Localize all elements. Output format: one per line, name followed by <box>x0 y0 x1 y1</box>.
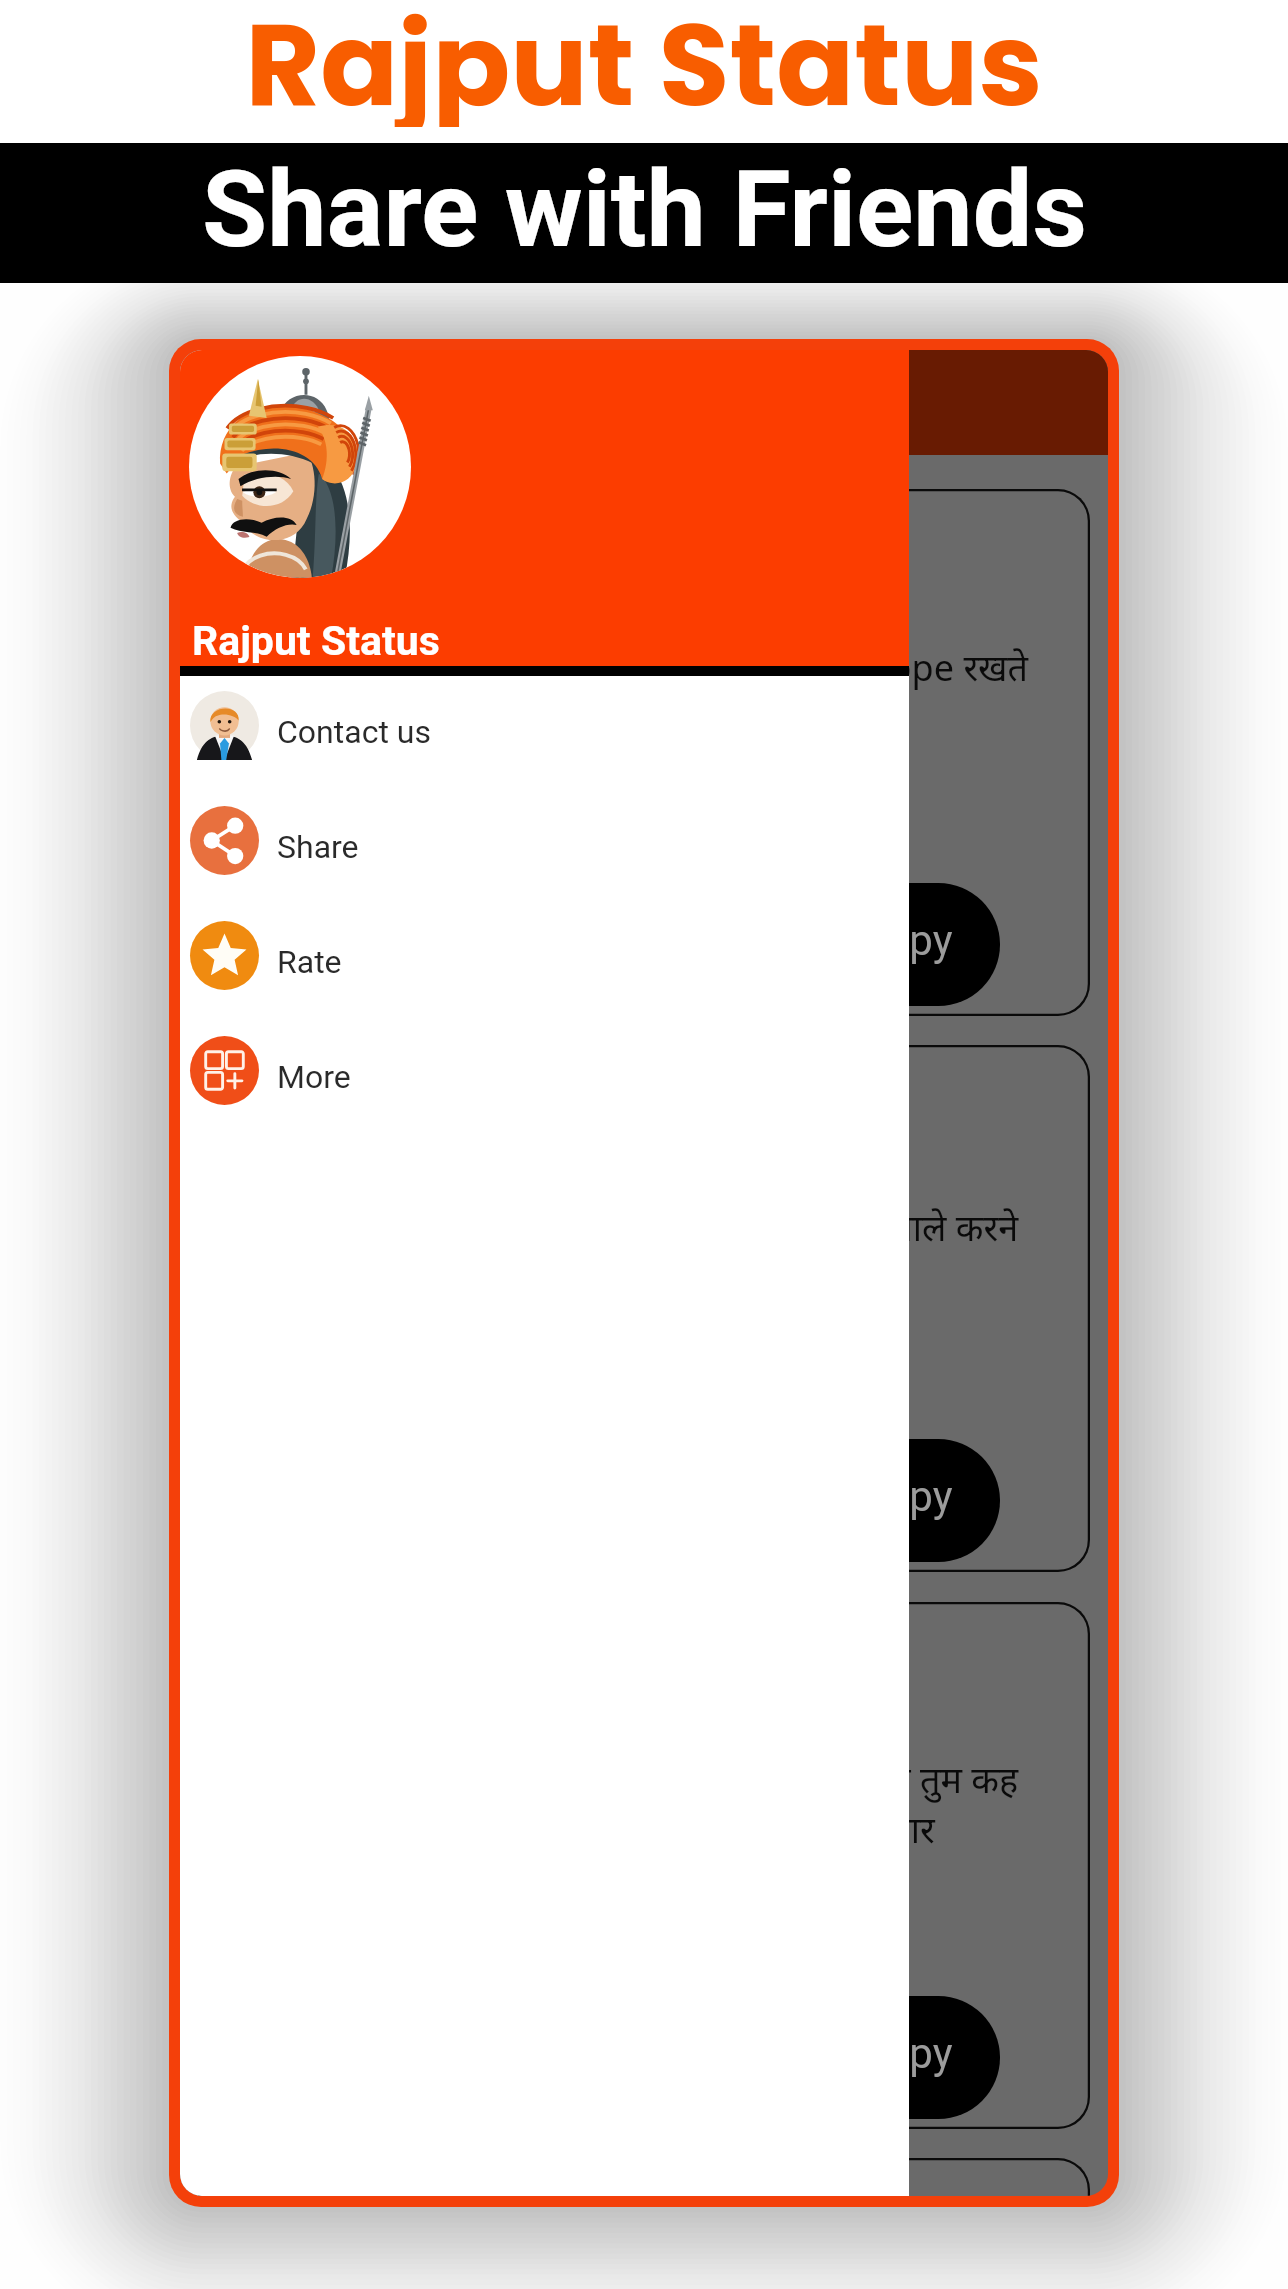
staticText: Contact us <box>277 713 431 751</box>
other: Share <box>190 806 259 875</box>
other: Rate <box>190 921 259 990</box>
staticText: बात उन लोगों की है जो अपने दिल में हमेशा… <box>238 599 1029 696</box>
button[interactable]: Copy <box>785 1996 1000 2119</box>
button[interactable]: Contact us <box>180 668 909 783</box>
other: More <box>190 1036 259 1105</box>
staticText: कोई हमसे हमारी असली पहचान कभी भी पूछे तो… <box>238 1761 1019 1858</box>
button[interactable]: More <box>180 1013 909 1128</box>
staticText: Rajput Status <box>192 617 440 665</box>
staticText: Copy <box>858 916 953 965</box>
staticText: More <box>277 1058 351 1096</box>
staticText: पहले दुश्मन को भी सलाम करने का बहुत अच्छ… <box>238 1159 1019 1256</box>
staticText: Share with Friends <box>202 148 1087 272</box>
staticText: Rajput Status <box>245 0 1043 127</box>
button[interactable] <box>198 2158 1090 2196</box>
staticText: Copy <box>858 2029 953 2078</box>
button[interactable]: Share <box>180 783 909 898</box>
button[interactable]: पहले दुश्मन को भी सलाम करने का बहुत अच्छ… <box>198 1045 1090 1572</box>
button[interactable]: Rate <box>180 898 909 1013</box>
button[interactable]: बात उन लोगों की है जो अपने दिल में हमेशा… <box>198 489 1090 1016</box>
button[interactable]: Copy <box>785 1439 1000 1562</box>
button[interactable]: कोई हमसे हमारी असली पहचान कभी भी पूछे तो… <box>198 1602 1090 2129</box>
staticText: Share <box>277 828 359 866</box>
staticText: Copy <box>858 1472 953 1521</box>
button[interactable]: Copy <box>785 883 1000 1006</box>
staticText: Rate <box>277 943 342 981</box>
